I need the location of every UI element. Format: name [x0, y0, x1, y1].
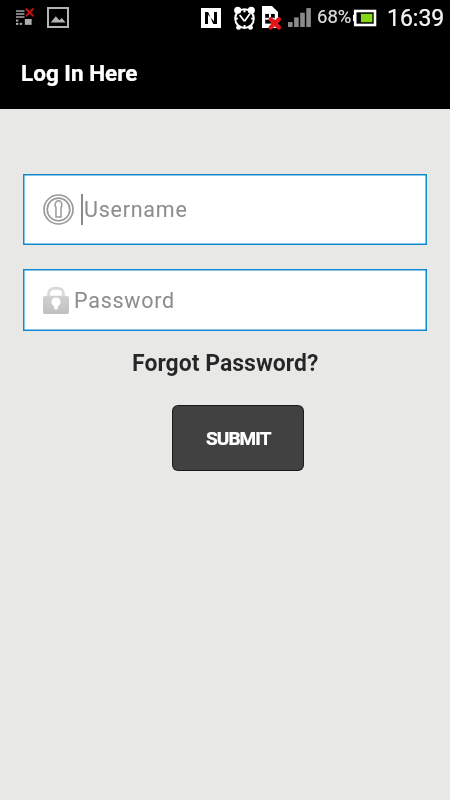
- button[interactable]: SUBMIT: [173, 406, 303, 470]
- button[interactable]: Forgot Password?: [128, 348, 323, 379]
- staticText: Log In Here: [21, 60, 138, 86]
- staticText: 68%: [317, 6, 352, 28]
- button[interactable]: Username: [23, 174, 427, 245]
- staticText: SUBMIT: [206, 427, 271, 449]
- staticText: Password: [74, 288, 175, 313]
- button[interactable]: Password: [23, 269, 427, 331]
- staticText: 16:39: [387, 5, 445, 32]
- staticText: Username: [84, 197, 188, 222]
